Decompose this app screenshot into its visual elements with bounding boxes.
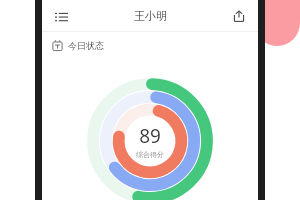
button[interactable]: Share	[228, 5, 250, 27]
staticText: 王小明	[134, 9, 167, 23]
staticText: 今日状态	[68, 40, 104, 51]
button[interactable]: 今日状态	[52, 32, 258, 58]
staticText: 综合得分	[136, 150, 164, 159]
staticText: 89	[139, 123, 161, 149]
button[interactable]: Menu	[50, 5, 72, 27]
